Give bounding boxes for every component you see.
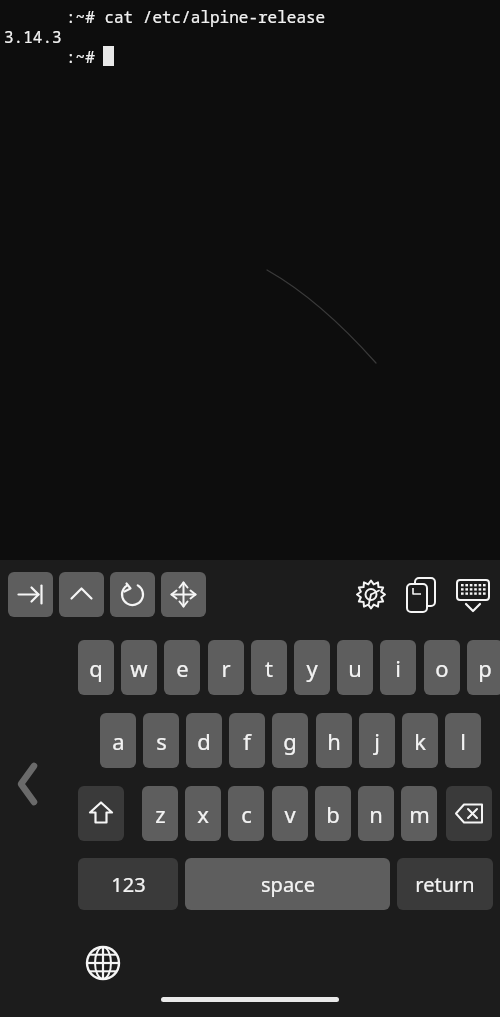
button[interactable]: Hide keyboard xyxy=(451,572,493,617)
button[interactable]: q xyxy=(78,640,114,695)
staticText: q xyxy=(89,653,103,683)
button[interactable]: Back xyxy=(8,756,48,812)
staticText: w xyxy=(130,653,148,683)
button[interactable]: Control xyxy=(59,572,104,617)
button[interactable]: a xyxy=(100,713,136,768)
button[interactable]: w xyxy=(121,640,157,695)
button[interactable]: Copy and paste xyxy=(401,572,441,617)
button[interactable]: Backspace xyxy=(446,786,492,841)
staticText: y xyxy=(306,653,318,683)
staticText: v xyxy=(284,799,296,829)
staticText: p xyxy=(478,653,492,683)
button[interactable]: u xyxy=(337,640,373,695)
staticText: 3.14.3 xyxy=(4,26,62,48)
staticText: d xyxy=(197,726,211,756)
staticText: x xyxy=(197,799,209,829)
button[interactable]: r xyxy=(208,640,244,695)
staticText: space xyxy=(261,871,315,898)
button[interactable]: Settings xyxy=(351,572,391,617)
staticText: h xyxy=(327,726,341,756)
button[interactable]: j xyxy=(359,713,395,768)
button[interactable]: l xyxy=(445,713,481,768)
button[interactable]: Change keyboard xyxy=(83,943,123,983)
staticText: l xyxy=(460,726,466,756)
button[interactable]: d xyxy=(186,713,222,768)
staticText: n xyxy=(369,799,383,829)
button[interactable]: b xyxy=(315,786,351,841)
button[interactable]: space xyxy=(185,858,390,910)
button[interactable]: Tab xyxy=(8,572,53,617)
staticText: :~# cat /etc/alpine-release xyxy=(66,6,326,28)
button[interactable]: y xyxy=(294,640,330,695)
staticText: k xyxy=(414,726,426,756)
button[interactable]: s xyxy=(143,713,179,768)
button[interactable]: Undo xyxy=(110,572,155,617)
button[interactable]: m xyxy=(401,786,437,841)
staticText: s xyxy=(156,726,167,756)
button[interactable]: n xyxy=(358,786,394,841)
staticText: z xyxy=(155,799,166,829)
button[interactable]: Shift xyxy=(78,786,124,841)
button[interactable]: h xyxy=(316,713,352,768)
staticText: c xyxy=(241,799,252,829)
staticText: r xyxy=(221,653,231,683)
staticText: e xyxy=(176,653,189,683)
button[interactable]: z xyxy=(142,786,178,841)
staticText: u xyxy=(348,653,362,683)
button[interactable]: v xyxy=(272,786,308,841)
staticText: :~# xyxy=(66,46,95,68)
staticText: return xyxy=(415,871,475,898)
button[interactable]: return xyxy=(397,858,493,910)
button[interactable]: e xyxy=(164,640,200,695)
button[interactable]: 123 xyxy=(78,858,178,910)
button[interactable]: t xyxy=(251,640,287,695)
staticText: m xyxy=(409,799,430,829)
staticText: f xyxy=(243,726,251,756)
button[interactable]: g xyxy=(272,713,308,768)
button[interactable]: x xyxy=(185,786,221,841)
button[interactable]: c xyxy=(228,786,264,841)
staticText: t xyxy=(265,653,273,683)
staticText: a xyxy=(112,726,125,756)
staticText: o xyxy=(435,653,449,683)
staticText: g xyxy=(283,726,297,756)
staticText: b xyxy=(326,799,340,829)
button[interactable]: k xyxy=(402,713,438,768)
button[interactable]: Move cursor xyxy=(161,572,206,617)
button[interactable]: i xyxy=(380,640,416,695)
button[interactable]: o xyxy=(424,640,460,695)
button[interactable]: f xyxy=(229,713,265,768)
staticText: i xyxy=(395,653,401,683)
staticText: j xyxy=(374,726,380,756)
button[interactable]: p xyxy=(467,640,500,695)
staticText: 123 xyxy=(111,871,146,898)
